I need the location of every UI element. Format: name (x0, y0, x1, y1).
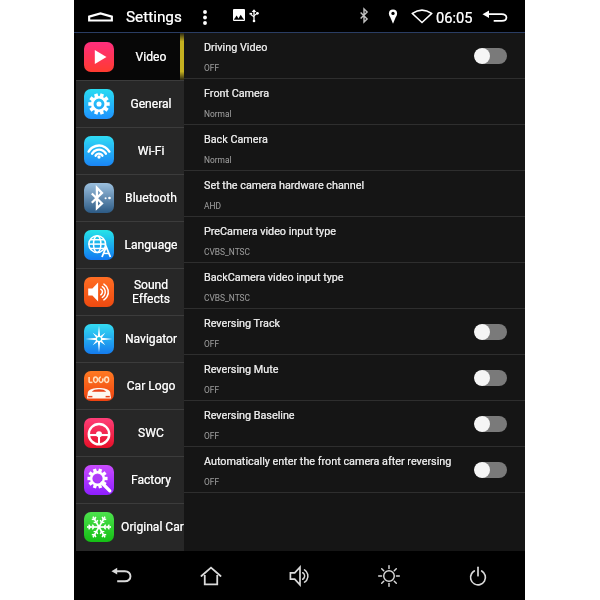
staticText: 06:05 (436, 9, 473, 26)
button[interactable]: Back (479, 3, 511, 30)
staticText: Factory (121, 473, 181, 487)
staticText: Back Camera (204, 133, 268, 146)
button[interactable]: Toggle Reversing Track (474, 324, 507, 340)
button[interactable]: Navigator (76, 315, 184, 362)
staticText: General (121, 97, 181, 111)
button[interactable]: Home (86, 4, 114, 30)
button[interactable]: Back Camera (184, 125, 525, 171)
button[interactable]: Language (76, 221, 184, 268)
staticText: SWC (121, 426, 181, 440)
staticText: BackCamera video input type (204, 271, 344, 284)
button[interactable]: Original Car (76, 503, 184, 550)
staticText: OFF (204, 339, 220, 349)
staticText: Reversing Track (204, 317, 281, 330)
staticText: Bluetooth (121, 191, 181, 205)
button[interactable]: Reversing Mute (184, 355, 525, 401)
staticText: Wi-Fi (121, 144, 181, 158)
staticText: Normal (204, 109, 232, 119)
staticText: Sound Effects (121, 278, 181, 306)
staticText: Settings (126, 8, 182, 26)
staticText: Language (121, 238, 181, 252)
staticText: OFF (204, 477, 220, 487)
button[interactable]: Volume (276, 552, 324, 600)
button[interactable]: Power (454, 552, 502, 600)
button[interactable]: Reversing Baseline (184, 401, 525, 447)
button[interactable]: Bluetooth (76, 174, 184, 221)
staticText: CVBS_NTSC (204, 293, 251, 303)
staticText: OFF (204, 63, 220, 73)
button[interactable]: Toggle Reversing Baseline (474, 416, 507, 432)
button[interactable]: Front Camera (184, 79, 525, 125)
button[interactable]: Reversing Track (184, 309, 525, 355)
button[interactable]: Factory (76, 456, 184, 503)
button[interactable]: Back (98, 552, 146, 600)
button[interactable]: Automatically enter the front camera aft… (184, 447, 525, 493)
staticText: CVBS_NTSC (204, 247, 251, 257)
button[interactable]: BackCamera video input type (184, 263, 525, 309)
staticText: Reversing Mute (204, 363, 279, 376)
button[interactable]: Home (187, 552, 235, 600)
button[interactable]: Wi-Fi (76, 127, 184, 174)
button[interactable]: PreCamera video input type (184, 217, 525, 263)
button[interactable]: Car Logo (76, 362, 184, 409)
button[interactable]: General (76, 80, 184, 127)
button[interactable]: Brightness (365, 552, 413, 600)
button[interactable]: Toggle Automatically enter the front cam… (474, 462, 507, 478)
button[interactable]: Toggle Driving Video (474, 48, 507, 64)
staticText: Navigator (121, 332, 181, 346)
staticText: OFF (204, 431, 220, 441)
staticText: Automatically enter the front camera aft… (204, 455, 452, 468)
staticText: AHD (204, 201, 221, 211)
staticText: Reversing Baseline (204, 409, 295, 422)
button[interactable]: Sound Effects (76, 268, 184, 315)
button[interactable]: Video (76, 33, 184, 80)
staticText: Driving Video (204, 41, 268, 54)
staticText: Original Car (121, 520, 181, 534)
staticText: Normal (204, 155, 232, 165)
staticText: Front Camera (204, 87, 270, 100)
button[interactable]: Toggle Reversing Mute (474, 370, 507, 386)
staticText: PreCamera video input type (204, 225, 336, 238)
staticText: OFF (204, 385, 220, 395)
staticText: Set the camera hardware channel (204, 179, 365, 192)
button[interactable]: Set the camera hardware channel (184, 171, 525, 217)
button[interactable]: Driving Video (184, 33, 525, 79)
button[interactable]: More options (196, 4, 213, 30)
staticText: Car Logo (121, 379, 181, 393)
button[interactable]: SWC (76, 409, 184, 456)
staticText: Video (121, 50, 181, 64)
